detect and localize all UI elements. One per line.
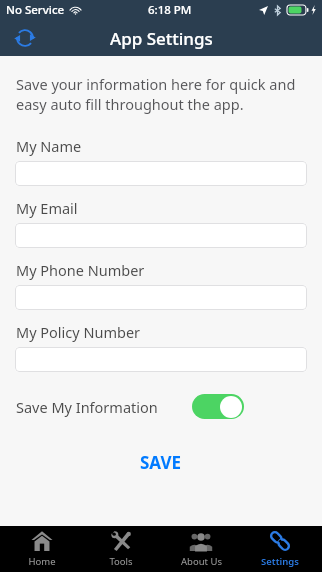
- staticText: My Email: [16, 198, 78, 218]
- staticText: My Name: [16, 136, 82, 156]
- button[interactable]: Settings: [243, 526, 317, 572]
- staticText: My Policy Number: [16, 322, 141, 342]
- button[interactable]: [15, 223, 307, 248]
- button[interactable]: [15, 285, 307, 310]
- staticText: No Service: [6, 2, 65, 18]
- staticText: Save My Information: [16, 397, 158, 417]
- button[interactable]: Tools: [84, 526, 158, 572]
- button[interactable]: Save My Information toggle: [192, 394, 244, 419]
- staticText: About Us: [181, 555, 222, 568]
- button[interactable]: Refresh: [8, 21, 42, 55]
- staticText: Tools: [109, 555, 133, 568]
- button[interactable]: About Us: [164, 526, 238, 572]
- button[interactable]: [15, 161, 307, 186]
- staticText: SAVE: [140, 451, 182, 474]
- button[interactable]: SAVE: [122, 445, 200, 480]
- button[interactable]: Home: [5, 526, 79, 572]
- staticText: Settings: [261, 555, 299, 568]
- staticText: App Settings: [110, 27, 213, 50]
- button[interactable]: [15, 347, 307, 372]
- staticText: 6:18 PM: [148, 2, 192, 18]
- staticText: Save your information here for quick and…: [16, 74, 298, 114]
- staticText: My Phone Number: [16, 260, 145, 280]
- staticText: Home: [28, 555, 56, 568]
